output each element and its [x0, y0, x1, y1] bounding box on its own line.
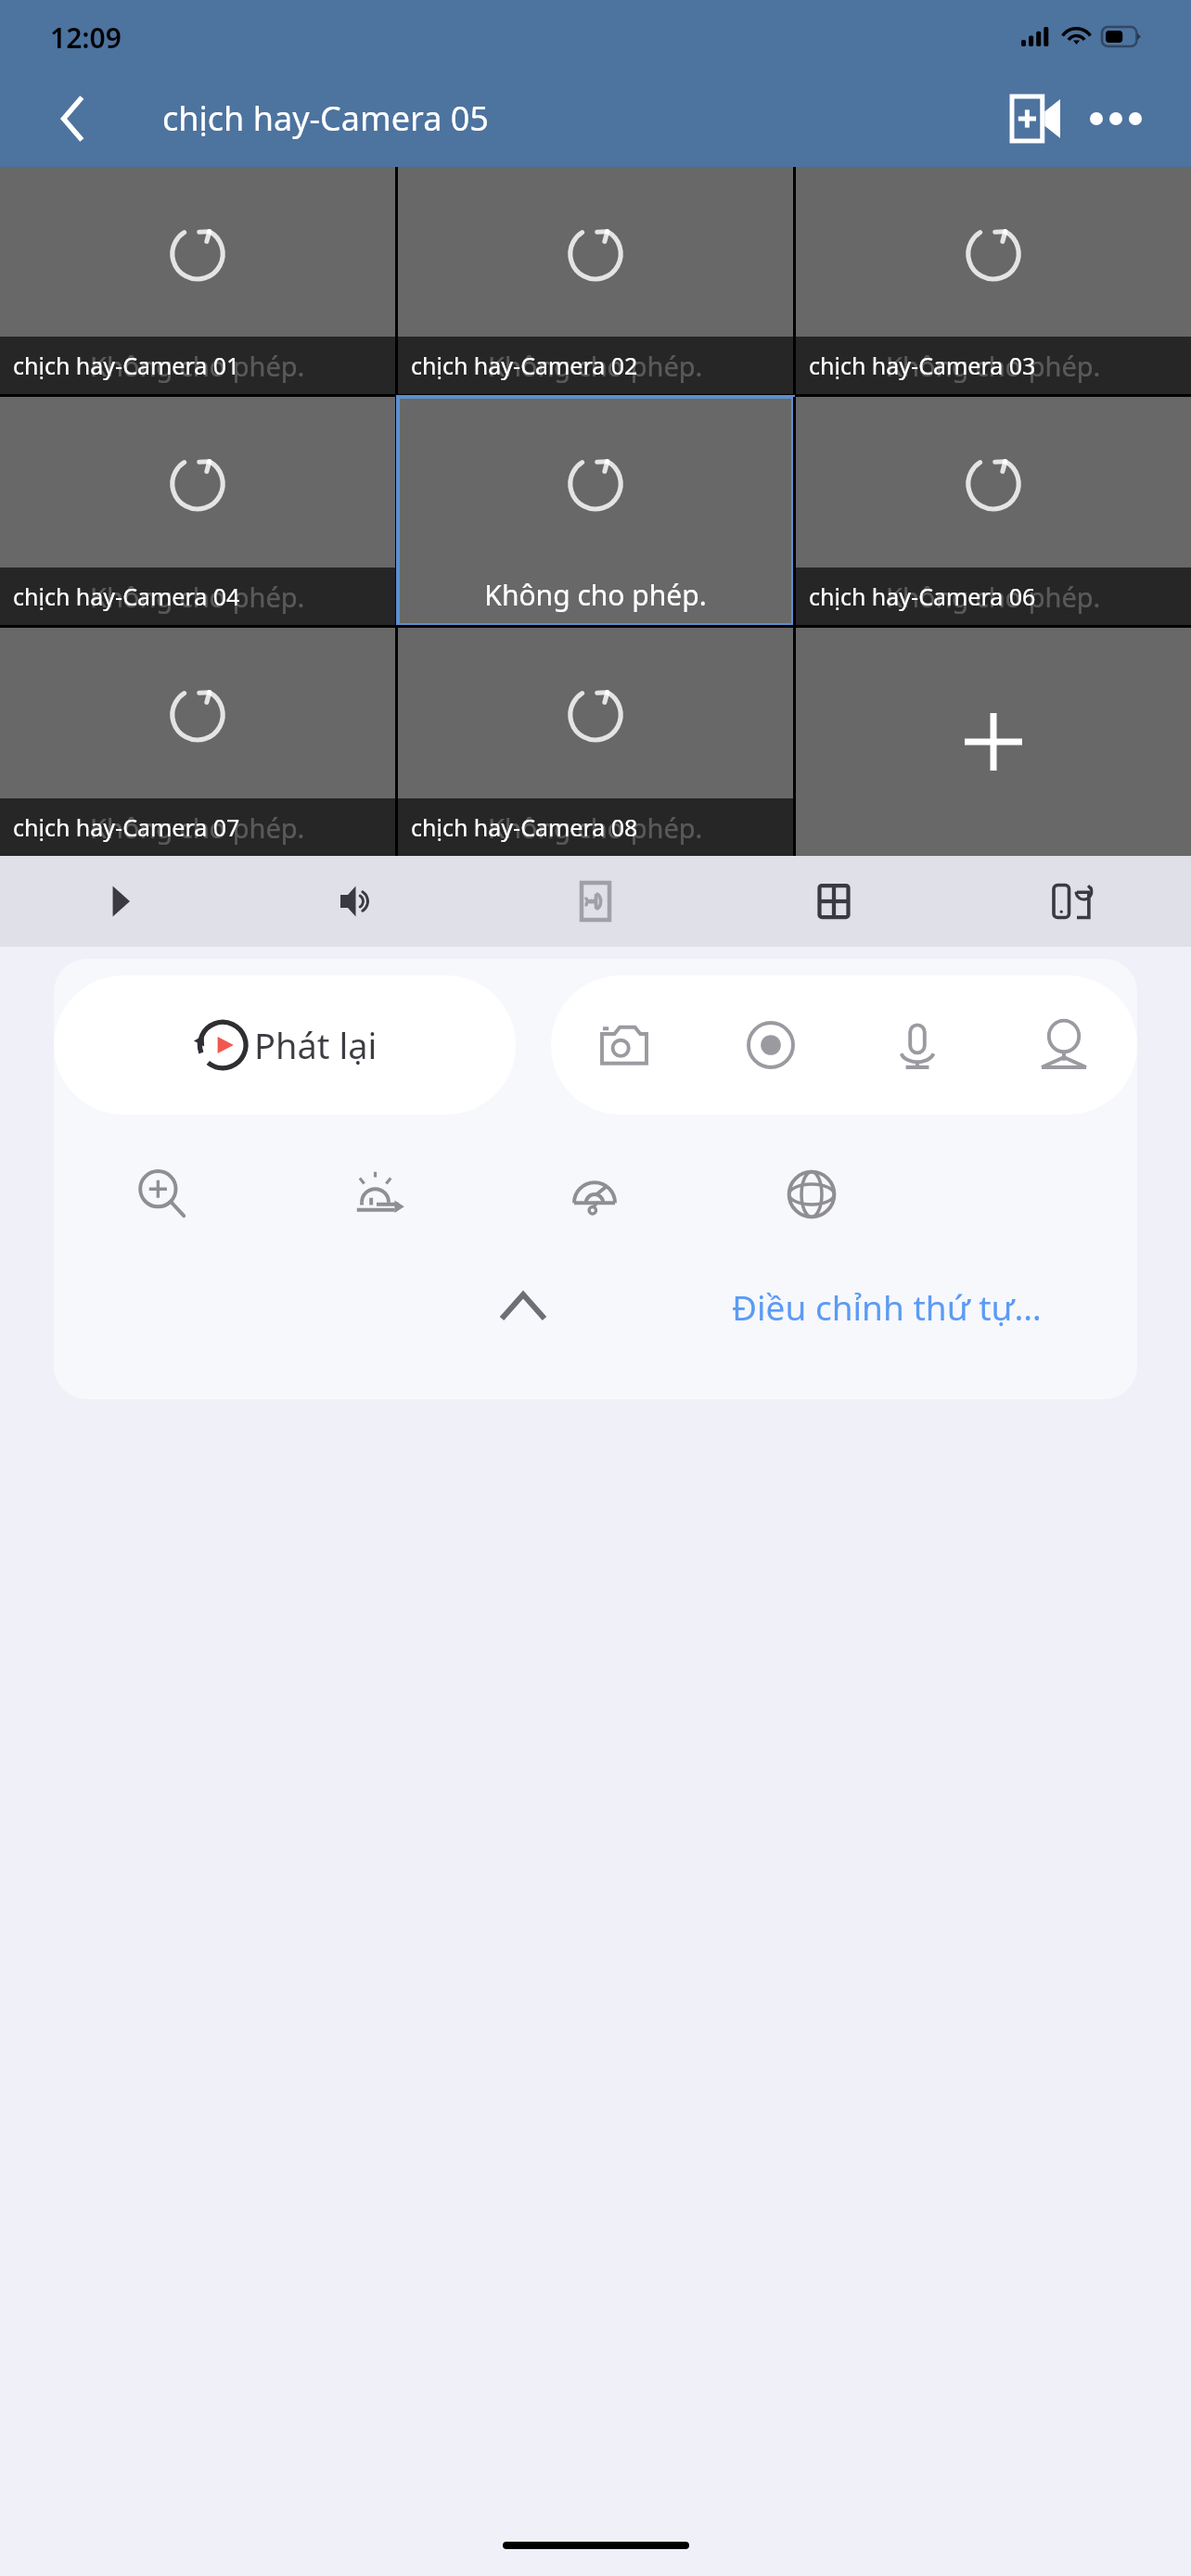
button[interactable]: Điều chỉnh thứ tự… [724, 1274, 1049, 1339]
staticText: chịch hay-Camera 06 [809, 580, 1036, 612]
staticText: Không cho phép. [886, 348, 1101, 384]
button[interactable]: More options [1080, 83, 1152, 155]
staticText: Không cho phép. [90, 579, 305, 615]
staticText: chịch hay-Camera 07 [13, 811, 240, 843]
staticText: Không cho phép. [488, 347, 703, 383]
staticText: Không cho phép. [90, 347, 305, 383]
staticText: Phát lại [254, 1021, 378, 1069]
staticText: Không cho phép. [488, 348, 703, 384]
staticText: Không cho phép. [488, 810, 703, 846]
staticText: chịch hay-Camera 04 [13, 580, 240, 612]
staticText: chịch hay-Camera 02 [411, 350, 638, 381]
staticText: Không cho phép. [90, 348, 305, 384]
button[interactable]: Microphone [844, 976, 991, 1115]
button[interactable]: Record [698, 976, 844, 1115]
button[interactable]: Panorama [763, 1146, 860, 1243]
staticText: Không cho phép. [488, 809, 703, 845]
button[interactable]: Add camera [796, 628, 1191, 856]
staticText: chịch hay-Camera 05 [162, 96, 489, 141]
staticText: Không cho phép. [90, 809, 305, 845]
button[interactable]: Back [45, 89, 104, 148]
button[interactable]: Play [0, 856, 237, 947]
button[interactable]: Stream quality SD [476, 856, 714, 947]
staticText: Không cho phép. [886, 347, 1101, 383]
staticText: chịch hay-Camera 03 [809, 350, 1036, 381]
button[interactable]: Fisheye view [546, 1146, 643, 1243]
button[interactable]: Add camera [1000, 83, 1072, 155]
button[interactable]: chịch hay-Camera 02 [398, 167, 793, 394]
staticText: Không cho phép. [484, 576, 707, 614]
button[interactable]: chịch hay-Camera 05 [398, 397, 793, 625]
staticText: chịch hay-Camera 08 [411, 811, 638, 843]
button[interactable]: Snapshot [551, 976, 698, 1115]
button[interactable]: chịch hay-Camera 08 [398, 628, 793, 856]
button[interactable]: Digital zoom [114, 1146, 211, 1243]
staticText: chịch hay-Camera 01 [13, 350, 240, 381]
button[interactable]: Collapse [479, 1262, 568, 1351]
button[interactable]: chịch hay-Camera 06 [796, 397, 1191, 625]
staticText: Không cho phép. [886, 578, 1101, 614]
button[interactable]: Alarm output [330, 1146, 427, 1243]
staticText: Điều chỉnh thứ tự… [732, 1283, 1042, 1330]
button[interactable]: chịch hay-Camera 04 [0, 397, 395, 625]
button[interactable]: Rotate screen [953, 856, 1191, 947]
staticText: Không cho phép. [90, 578, 305, 614]
button[interactable]: chịch hay-Camera 01 [0, 167, 395, 394]
button[interactable]: Grid layout [714, 856, 953, 947]
button[interactable]: PTZ control [991, 976, 1137, 1115]
staticText: Không cho phép. [886, 579, 1101, 615]
staticText: 12:09 [50, 19, 122, 57]
button[interactable]: Phát lại [54, 976, 516, 1115]
button[interactable]: chịch hay-Camera 03 [796, 167, 1191, 394]
staticText: Không cho phép. [90, 810, 305, 846]
button[interactable]: chịch hay-Camera 07 [0, 628, 395, 856]
button[interactable]: Volume [237, 856, 476, 947]
